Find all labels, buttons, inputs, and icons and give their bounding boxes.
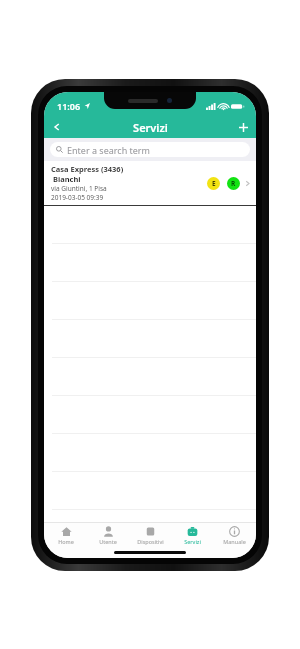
staticText: Bianchi — [51, 174, 81, 184]
button[interactable]: Manuale — [214, 523, 254, 547]
staticText: E — [212, 179, 216, 188]
staticText: Manuale — [223, 538, 246, 545]
staticText: R — [231, 179, 236, 188]
staticText: 11:06 — [57, 100, 81, 112]
staticText: Servizi — [133, 120, 168, 135]
button[interactable]: Enter a search term — [50, 142, 250, 157]
staticText: Utente — [99, 538, 117, 545]
button[interactable]: Add — [230, 116, 256, 138]
button[interactable]: Utente — [88, 523, 128, 547]
staticText: via Giuntini, 1 Pisa — [51, 184, 107, 193]
button[interactable]: Servizi — [172, 523, 212, 547]
button[interactable]: Casa Express (3436) — [44, 161, 256, 206]
staticText: Servizi — [184, 538, 201, 545]
staticText: Enter a search term — [67, 144, 150, 156]
button[interactable]: Home — [46, 523, 86, 547]
staticText: Dispositivi — [137, 538, 164, 545]
staticText: 2019-03-05 09:39 — [51, 193, 104, 202]
staticText: Casa Express (3436) — [51, 164, 124, 174]
staticText: Home — [58, 538, 74, 545]
button[interactable]: Dispositivi — [130, 523, 170, 547]
button[interactable]: Back — [44, 116, 70, 138]
